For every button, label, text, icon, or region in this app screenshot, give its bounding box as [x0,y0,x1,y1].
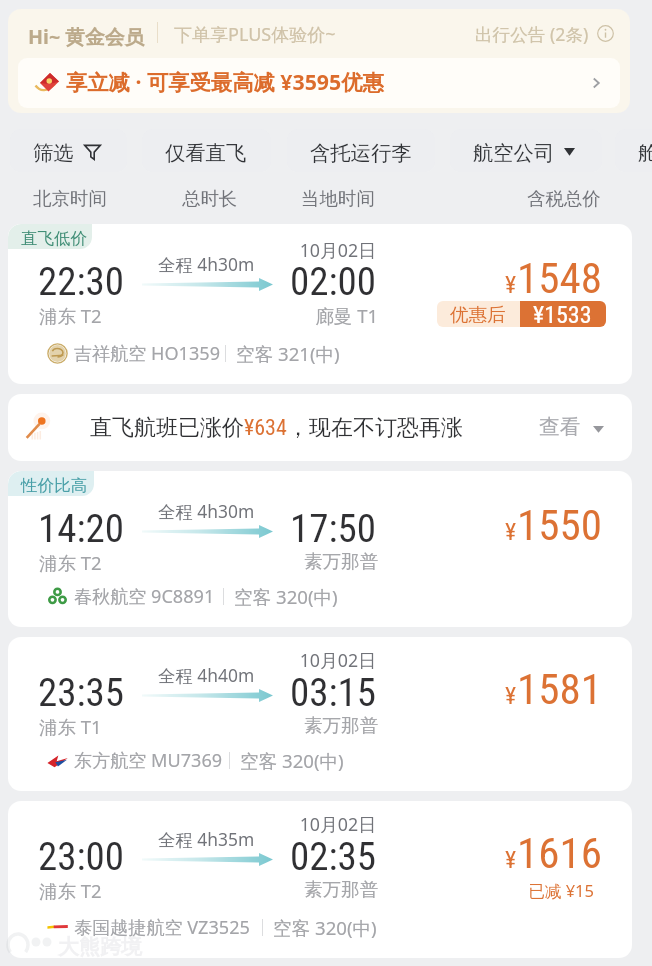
staticText: 空客 320(中) [234,584,338,609]
staticText: 出行公告 (2条) [475,22,589,46]
staticText: 已减 ¥15 [408,879,594,902]
button[interactable]: 航空公司 [450,129,602,172]
staticText: ¥1533 [533,301,592,327]
staticText: 22:30 [38,259,125,305]
button[interactable]: 查看 [539,414,604,440]
staticText: 10月02日 [223,238,376,262]
button[interactable]: 筛选 [10,129,127,172]
staticText: 素万那普 [223,550,378,573]
button[interactable]: 14:20 [8,471,632,627]
button[interactable]: 23:00 [8,801,632,958]
staticText: 优惠后 [450,303,506,326]
staticText: 浦东 T2 [39,550,102,575]
staticText: 舱 [638,140,652,166]
staticText: 23:35 [38,670,125,716]
button[interactable]: 含托运行李 [287,129,435,172]
staticText: 仅看直飞 [165,140,247,166]
staticText: 查看 [539,414,581,440]
staticText: 1548 [517,253,602,303]
button[interactable]: 仅看直飞 [142,129,271,172]
button[interactable]: 查看优惠详情 [589,76,603,90]
staticText: 下单享PLUS体验价~ [174,22,336,47]
staticText: 航空公司 [473,140,555,166]
staticText: 北京时间 [33,187,107,210]
staticText: ¥ [505,518,517,546]
staticText: ¥ [505,846,517,874]
button[interactable]: 直飞航班已涨价 [8,394,632,461]
staticText: 1616 [517,828,602,878]
staticText: 浦东 T2 [39,303,102,328]
staticText: 17:50 [223,506,376,552]
staticText: 廊曼 T1 [223,303,378,328]
staticText: ¥ [505,271,517,299]
staticText: 素万那普 [223,878,378,901]
staticText: 全程 4h35m [158,827,255,851]
staticText: 02:35 [223,834,376,880]
staticText: 02:00 [223,259,376,305]
staticText: Hi~ 黄金会员 [28,23,145,50]
staticText: 吉祥航空 HO1359 [74,341,221,366]
staticText: 浦东 T2 [39,878,102,903]
staticText: 10月02日 [223,648,376,672]
staticText: ¥634 [244,415,287,441]
button[interactable]: 23:35 [8,637,632,791]
staticText: 空客 321(中) [236,341,340,366]
button[interactable]: 出行公告说明 [597,25,614,42]
button[interactable]: 享立减 · 可享受最高减 ¥3595优惠 [18,58,620,108]
staticText: 14:20 [38,506,125,552]
staticText: ，现在不订恐再涨 [287,414,463,442]
staticText: ¥ [505,682,517,710]
staticText: 总时长 [182,187,238,210]
staticText: 空客 320(中) [240,748,344,773]
staticText: 含托运行李 [310,140,412,166]
staticText: 含税总价 [527,187,601,210]
staticText: 全程 4h40m [158,663,255,687]
button[interactable]: 舱 [615,129,652,172]
staticText: 10月02日 [223,812,376,836]
staticText: 全程 4h30m [158,252,255,276]
staticText: 素万那普 [223,714,378,737]
staticText: 1581 [517,664,602,714]
staticText: 直飞低价 [21,228,87,249]
staticText: 性价比高 [21,475,87,496]
staticText: 大熊跨境 [58,934,142,960]
staticText: 全程 4h30m [158,499,255,523]
staticText: 23:00 [38,834,125,880]
staticText: 浦东 T1 [39,714,102,739]
staticText: 03:15 [223,670,376,716]
staticText: 春秋航空 9C8891 [74,584,215,609]
staticText: 享立减 · 可享受最高减 ¥3595优惠 [66,67,384,96]
button[interactable]: 22:30 [8,224,632,384]
staticText: 东方航空 MU7369 [74,748,223,773]
staticText: 空客 320(中) [273,915,377,940]
staticText: 直飞航班已涨价 [90,414,244,442]
staticText: 当地时间 [301,187,375,210]
staticText: 泰国越捷航空 VZ3525 [74,915,250,940]
staticText: 1550 [517,500,602,550]
staticText: 筛选 [33,140,74,166]
